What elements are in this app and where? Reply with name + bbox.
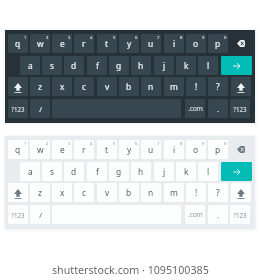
button[interactable]: m xyxy=(164,77,184,96)
staticText: i xyxy=(173,38,176,49)
button[interactable]: g xyxy=(109,56,129,75)
button[interactable]: e xyxy=(52,140,72,159)
staticText: . xyxy=(217,210,219,220)
button[interactable]: o xyxy=(186,140,206,159)
button[interactable]: t xyxy=(97,34,117,53)
button[interactable]: ? xyxy=(208,77,228,96)
staticText: 3 xyxy=(68,141,71,147)
button[interactable]: c xyxy=(74,183,94,202)
button[interactable]: ! xyxy=(186,183,206,202)
button[interactable]: f xyxy=(87,162,107,181)
button[interactable]: j xyxy=(154,162,174,181)
button[interactable]: j xyxy=(154,56,174,75)
button[interactable]: Shift xyxy=(8,183,28,202)
button[interactable]: q xyxy=(8,140,28,159)
button[interactable]: Shift xyxy=(8,77,28,96)
button[interactable]: a xyxy=(20,56,40,75)
staticText: shutterstock.com · 1095100385 xyxy=(52,263,209,278)
button[interactable]: f xyxy=(87,56,107,75)
staticText: 7 xyxy=(157,35,160,41)
staticText: n xyxy=(148,81,154,92)
button[interactable]: / xyxy=(30,205,50,224)
button[interactable]: i xyxy=(164,34,184,53)
button[interactable]: p xyxy=(208,34,228,53)
button[interactable]: v xyxy=(97,77,117,96)
button[interactable]: ! xyxy=(186,77,206,96)
staticText: / xyxy=(39,104,42,114)
button[interactable]: n xyxy=(141,77,161,96)
staticText: t xyxy=(105,144,109,155)
button[interactable]: z xyxy=(30,183,50,202)
button[interactable]: Shift xyxy=(231,183,251,202)
button[interactable]: ?123 xyxy=(230,99,250,118)
button[interactable]: .com xyxy=(185,99,205,118)
button[interactable]: Backspace xyxy=(231,140,251,159)
button[interactable]: g xyxy=(109,162,129,181)
staticText: g xyxy=(116,166,122,177)
button[interactable]: t xyxy=(97,140,117,159)
button[interactable]: l xyxy=(198,56,218,75)
button[interactable]: d xyxy=(64,56,84,75)
button[interactable]: .com xyxy=(185,205,205,224)
button[interactable]: u xyxy=(141,34,161,53)
button[interactable]: w xyxy=(30,140,50,159)
button[interactable]: u xyxy=(141,140,161,159)
button[interactable]: r xyxy=(74,140,94,159)
staticText: ! xyxy=(195,81,198,92)
staticText: ?123 xyxy=(11,105,25,113)
button[interactable]: k xyxy=(176,162,196,181)
button[interactable]: h xyxy=(131,56,151,75)
button[interactable]: c xyxy=(74,77,94,96)
button[interactable]: ? xyxy=(208,183,228,202)
button[interactable]: x xyxy=(52,183,72,202)
button[interactable]: k xyxy=(176,56,196,75)
button[interactable]: Shift xyxy=(231,77,251,96)
button[interactable]: m xyxy=(164,183,184,202)
staticText: l xyxy=(207,166,210,177)
staticText: y xyxy=(127,144,132,155)
staticText: v xyxy=(105,187,110,198)
button[interactable]: b xyxy=(119,77,139,96)
button[interactable]: ?123 xyxy=(230,205,250,224)
button[interactable]: y xyxy=(119,34,139,53)
button[interactable]: n xyxy=(141,183,161,202)
staticText: d xyxy=(71,60,77,71)
staticText: k xyxy=(184,60,189,71)
button[interactable]: a xyxy=(20,162,40,181)
button[interactable]: Enter xyxy=(221,162,252,181)
button[interactable]: h xyxy=(131,162,151,181)
button[interactable]: y xyxy=(119,140,139,159)
staticText: q xyxy=(15,144,21,155)
staticText: .com xyxy=(188,104,203,113)
button[interactable]: Enter xyxy=(221,56,252,75)
button[interactable]: ?123 xyxy=(8,99,28,118)
staticText: w xyxy=(37,38,44,49)
button[interactable]: d xyxy=(64,162,84,181)
button[interactable]: Backspace xyxy=(231,34,251,53)
button[interactable]: s xyxy=(42,162,62,181)
button[interactable]: r xyxy=(74,34,94,53)
button[interactable]: s xyxy=(42,56,62,75)
button[interactable]: . xyxy=(208,205,228,224)
button[interactable]: ?123 xyxy=(8,205,28,224)
staticText: ?123 xyxy=(233,211,247,219)
staticText: q xyxy=(15,38,21,49)
button[interactable]: o xyxy=(186,34,206,53)
button[interactable]: l xyxy=(198,162,218,181)
button[interactable]: q xyxy=(8,34,28,53)
button[interactable]: w xyxy=(30,34,50,53)
button[interactable]: x xyxy=(52,77,72,96)
staticText: a xyxy=(28,166,33,177)
staticText: h xyxy=(138,166,144,177)
button[interactable]: v xyxy=(97,183,117,202)
button[interactable]: p xyxy=(208,140,228,159)
button[interactable]: e xyxy=(52,34,72,53)
button[interactable]: i xyxy=(164,140,184,159)
button[interactable]: z xyxy=(30,77,50,96)
button[interactable]: b xyxy=(119,183,139,202)
button[interactable]: / xyxy=(30,99,50,118)
staticText: ?123 xyxy=(233,105,247,113)
button[interactable]: . xyxy=(208,99,228,118)
